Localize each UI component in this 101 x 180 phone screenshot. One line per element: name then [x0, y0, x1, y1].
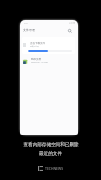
staticText: 我的文档 — [31, 58, 41, 61]
staticText: 正在下载文件 — [30, 42, 45, 45]
staticText: TECHNEWS — [45, 166, 64, 171]
staticText: 还剩 2 分钟 — [30, 45, 39, 47]
staticText: 文件管理 — [23, 28, 35, 32]
staticText: 查看内部存储空间和已删除 — [23, 142, 79, 148]
staticText: 9:41 — [24, 22, 29, 25]
button[interactable]: TECHNEWS — [38, 166, 64, 171]
button[interactable]: Search — [67, 28, 73, 34]
staticText: 最近的文件 — [39, 151, 62, 157]
staticText: 2024/01/01 · 12.5 MB — [31, 61, 48, 63]
button[interactable]: 正在下载文件 — [22, 37, 75, 54]
button[interactable]: 我的文档 — [20, 56, 78, 69]
